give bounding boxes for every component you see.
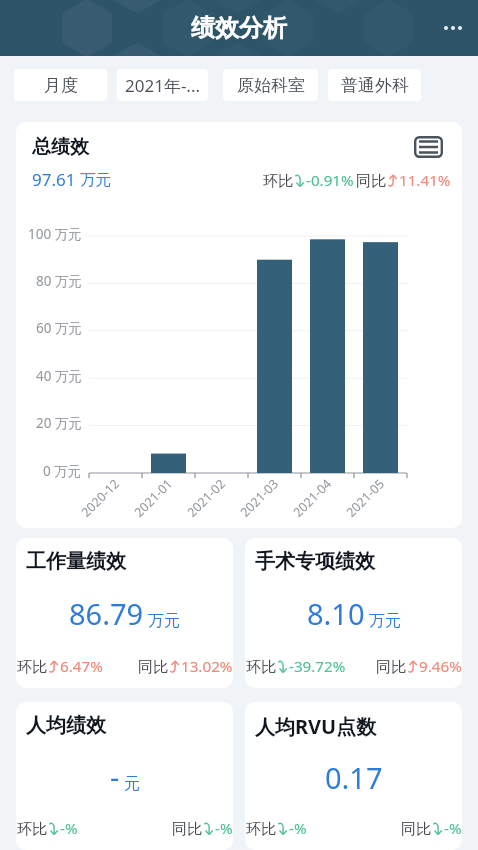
staticText: -% xyxy=(289,818,307,839)
staticText: 9.46% xyxy=(419,656,462,677)
button[interactable]: More options xyxy=(433,8,473,48)
staticText: -% xyxy=(215,818,233,839)
staticText: 人均RVU点数 xyxy=(255,713,377,740)
staticText: 环比 xyxy=(246,819,277,838)
staticText: 同比 xyxy=(401,819,432,838)
staticText: -0.91% xyxy=(306,170,354,191)
staticText: 元 xyxy=(124,774,140,794)
staticText: 普通外科 xyxy=(341,75,409,96)
staticText: 万元 xyxy=(369,611,401,631)
staticText: -% xyxy=(444,818,462,839)
staticText: 万元 xyxy=(148,611,180,631)
staticText: 0.17 xyxy=(325,758,383,797)
button[interactable]: 原始科室 xyxy=(223,69,318,101)
staticText: 手术专项绩效 xyxy=(255,549,375,574)
button[interactable]: 普通外科 xyxy=(328,69,421,101)
staticText: 月度 xyxy=(44,75,78,96)
button[interactable]: 人均RVU点数 xyxy=(245,702,462,850)
staticText: 总绩效 xyxy=(32,135,89,159)
button[interactable]: 总绩效 xyxy=(16,122,462,528)
staticText: -39.72% xyxy=(289,656,346,677)
staticText: 环比 xyxy=(17,819,48,838)
staticText: 同比 xyxy=(172,819,203,838)
staticText: 人均绩效 xyxy=(26,713,106,738)
staticText: 8.10 xyxy=(307,594,365,633)
staticText: 2021年-... xyxy=(125,74,201,97)
staticText: 万元 xyxy=(80,170,111,190)
button[interactable]: 手术专项绩效 xyxy=(245,538,462,688)
button[interactable]: 2021年-... xyxy=(117,69,208,101)
button[interactable]: 月度 xyxy=(14,69,107,101)
staticText: 11.41% xyxy=(399,170,451,191)
staticText: 环比 xyxy=(17,657,48,676)
button[interactable]: Table view xyxy=(414,136,443,158)
staticText: 同比 xyxy=(138,657,169,676)
staticText: -% xyxy=(60,818,78,839)
staticText: 原始科室 xyxy=(237,75,305,96)
button[interactable]: 人均绩效 xyxy=(16,702,233,850)
staticText: 环比 xyxy=(246,657,277,676)
staticText: 环比 xyxy=(263,171,294,190)
staticText: 86.79 xyxy=(69,594,144,633)
staticText: 同比 xyxy=(356,171,387,190)
staticText: 97.61 xyxy=(32,168,76,191)
staticText: 13.02% xyxy=(181,656,233,677)
staticText: 绩效分析 xyxy=(191,13,287,43)
staticText: - xyxy=(110,757,120,796)
button[interactable]: 工作量绩效 xyxy=(16,538,233,688)
staticText: 同比 xyxy=(376,657,407,676)
staticText: 6.47% xyxy=(60,656,103,677)
staticText: 工作量绩效 xyxy=(26,549,126,574)
